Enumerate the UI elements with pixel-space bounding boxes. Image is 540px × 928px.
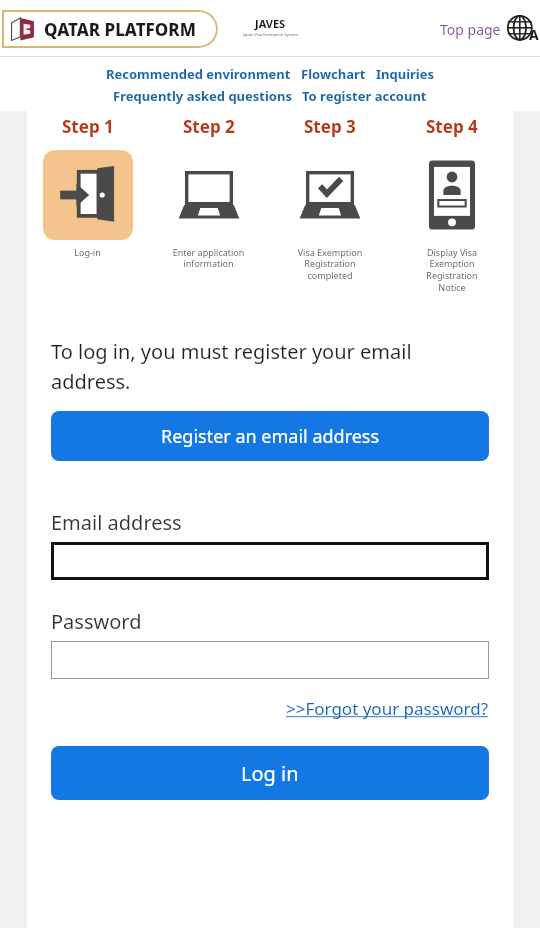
button[interactable]: Frequently asked questions [113, 87, 292, 105]
staticText: Step 4 [426, 115, 478, 138]
button[interactable]: Flowchart [301, 65, 366, 83]
staticText: Frequently asked questions [113, 87, 292, 105]
staticText: Display Visa Exemption Registration Noti… [393, 246, 511, 294]
button[interactable]: To register account [302, 87, 427, 105]
staticText: Password [51, 608, 142, 635]
staticText: Log in [241, 760, 299, 787]
staticText: To register account [302, 87, 427, 105]
staticText: Register an email address [161, 424, 380, 449]
button[interactable]: Inquiries [376, 65, 435, 83]
staticText: Visa Exemption Registration completed [271, 246, 389, 282]
staticText: Top page [440, 20, 501, 39]
staticText: Recommended environment [106, 65, 291, 83]
staticText: Enter application information [150, 246, 267, 270]
staticText: Inquiries [376, 65, 435, 83]
staticText: A [529, 25, 539, 44]
staticText: Step 3 [304, 115, 356, 138]
staticText: Step 2 [183, 115, 235, 138]
staticText: Step 1 [62, 115, 114, 138]
staticText: QATAR PLATFORM [44, 18, 196, 41]
staticText: Japan Visa Exemption System [243, 32, 298, 37]
staticText: To log in, you must register your email … [51, 338, 489, 395]
button[interactable] [51, 641, 489, 679]
button[interactable]: Top page [440, 12, 538, 46]
button[interactable]: QATAR PLATFORM [2, 10, 218, 48]
other: Language [504, 12, 538, 46]
staticText: Flowchart [301, 65, 366, 83]
button[interactable] [51, 542, 489, 580]
staticText: Email address [51, 509, 182, 536]
staticText: JAVES [255, 16, 286, 31]
button[interactable]: >>Forgot your password? [286, 697, 489, 720]
button[interactable]: Register an email address [51, 411, 489, 461]
button[interactable]: Log in [51, 746, 489, 800]
staticText: Log-in [29, 246, 146, 258]
staticText: >>Forgot your password? [286, 697, 489, 720]
button[interactable]: Recommended environment [106, 65, 291, 83]
